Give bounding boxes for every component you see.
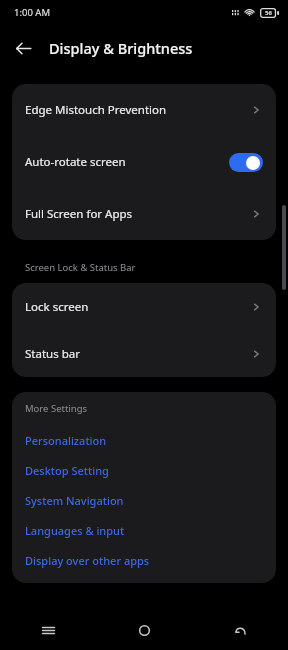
button[interactable]: Auto-rotate screen <box>12 136 276 188</box>
staticText: Screen Lock & Status Bar <box>25 261 136 274</box>
button[interactable]: System Navigation <box>12 485 276 515</box>
staticText: Status bar <box>25 346 249 362</box>
staticText: Lock screen <box>25 299 249 315</box>
button[interactable]: Lock screen <box>12 283 276 330</box>
staticText: System Navigation <box>25 493 124 508</box>
button[interactable]: Desktop Setting <box>12 455 276 485</box>
staticText: Full Screen for Apps <box>25 206 249 222</box>
button[interactable]: Display over other apps <box>12 545 276 575</box>
staticText: 56 <box>265 9 272 17</box>
staticText: Languages & input <box>25 523 125 538</box>
staticText: Personalization <box>25 433 107 448</box>
button[interactable]: Home <box>96 610 192 650</box>
button[interactable]: Back <box>192 610 288 650</box>
button[interactable]: Personalization <box>12 425 276 455</box>
button[interactable]: Recent apps <box>0 610 96 650</box>
staticText: Display over other apps <box>25 553 150 568</box>
button[interactable]: Status bar <box>12 330 276 377</box>
button[interactable]: Back <box>9 35 37 61</box>
staticText: Auto-rotate screen <box>25 154 229 170</box>
button[interactable]: Full Screen for Apps <box>12 188 276 240</box>
staticText: Desktop Setting <box>25 463 109 478</box>
button[interactable]: Languages & input <box>12 515 276 545</box>
staticText: More Settings <box>25 402 88 415</box>
button[interactable]: Edge Mistouch Prevention <box>12 84 276 136</box>
staticText: 1:00 AM <box>14 6 51 19</box>
staticText: Display & Brightness <box>49 38 193 58</box>
staticText: Edge Mistouch Prevention <box>25 102 249 118</box>
